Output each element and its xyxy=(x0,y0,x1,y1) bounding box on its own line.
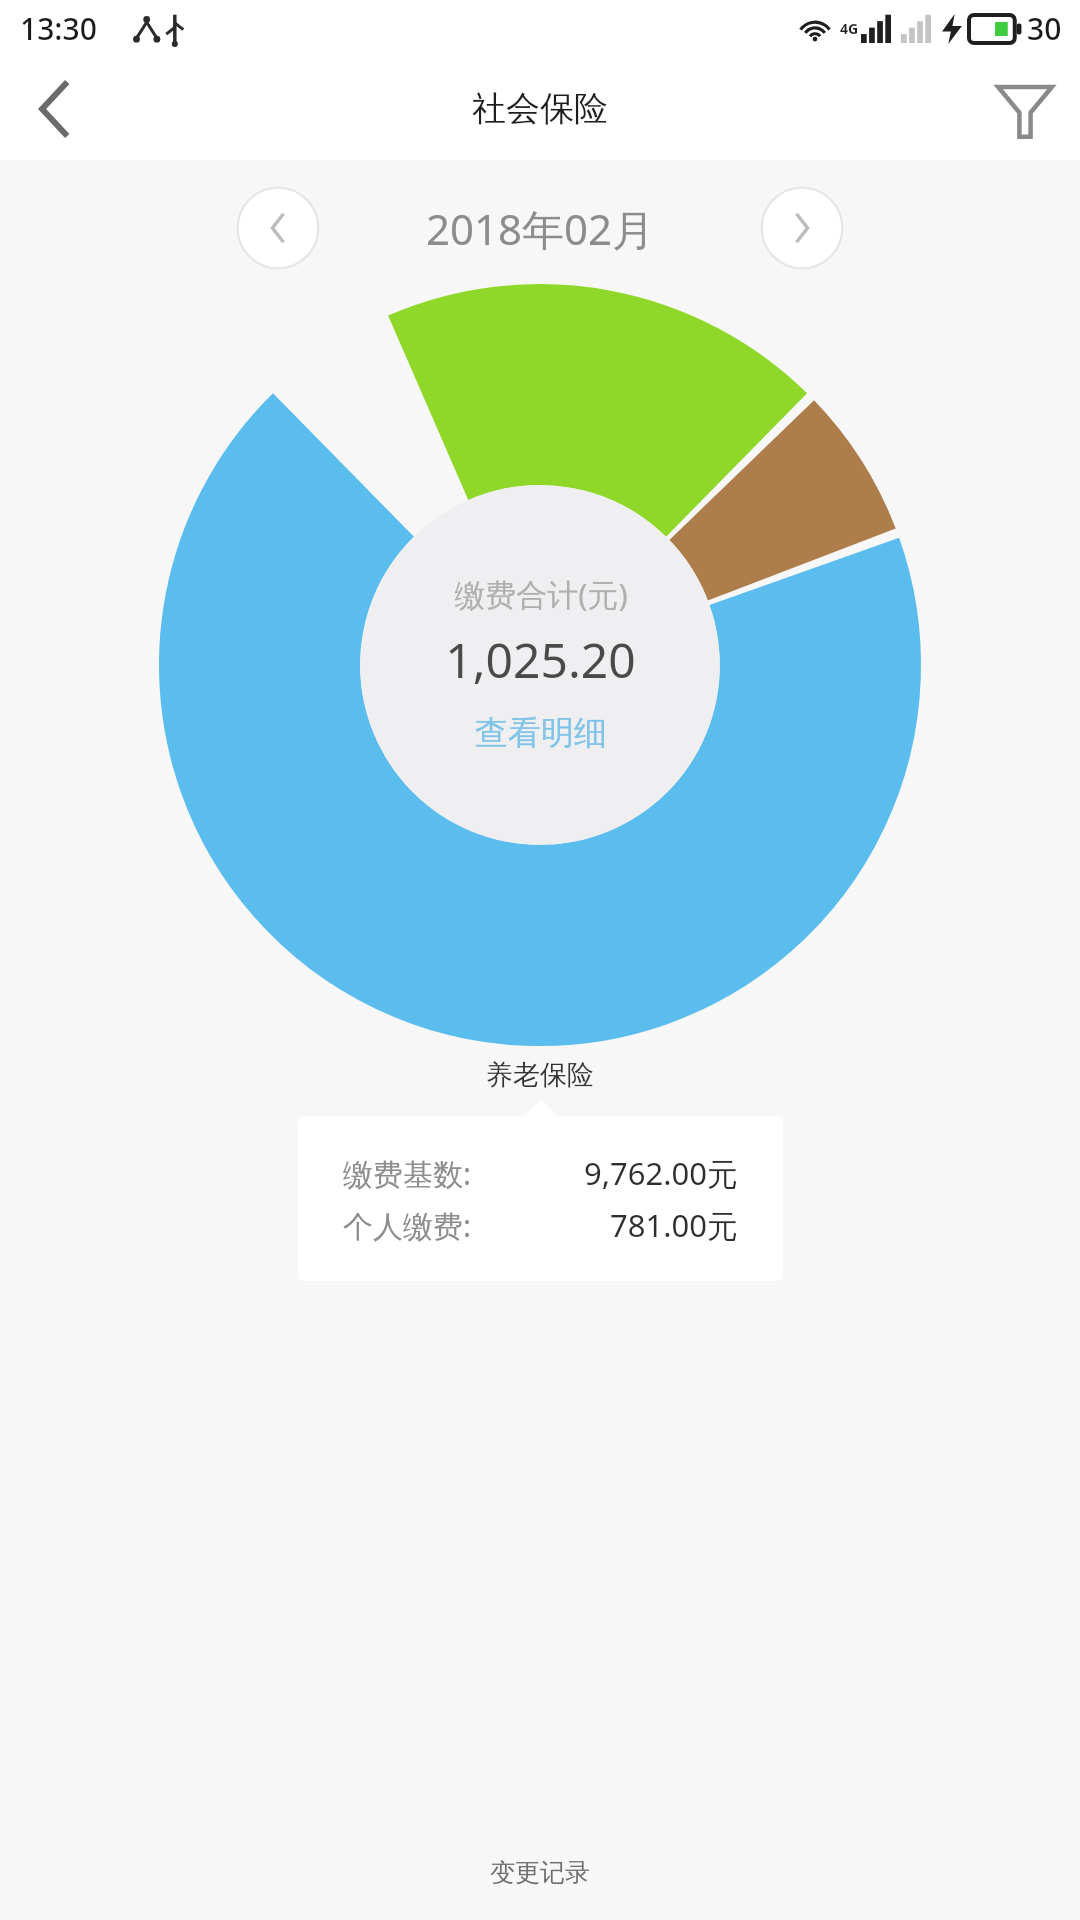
button[interactable]: Back xyxy=(0,57,110,160)
staticText: 2018年02月 xyxy=(320,200,760,257)
staticText: 9,762.00元 xyxy=(583,1152,738,1194)
staticText: 1,025.20 xyxy=(445,627,636,692)
button[interactable]: 变更记录 xyxy=(0,1824,1080,1920)
staticText: 缴费基数: xyxy=(343,1153,472,1194)
staticText: 30 xyxy=(1027,8,1062,49)
staticText: 变更记录 xyxy=(490,1857,590,1888)
button[interactable]: Filter xyxy=(970,57,1080,160)
staticText: 社会保险 xyxy=(472,87,608,130)
staticText: 养老保险 xyxy=(0,1058,1080,1092)
button[interactable]: 缴费基数: xyxy=(298,1116,783,1281)
staticText: 查看明细 xyxy=(475,712,607,754)
staticText: 13:30 xyxy=(20,8,97,49)
button[interactable]: Previous month xyxy=(236,186,320,270)
button[interactable]: Next month xyxy=(760,186,844,270)
button[interactable]: 查看明细 xyxy=(465,708,617,758)
staticText: 4G xyxy=(840,19,859,38)
staticText: 个人缴费: xyxy=(343,1205,472,1246)
staticText: 缴费合计(元) xyxy=(454,573,628,615)
staticText: 781.00元 xyxy=(610,1204,738,1246)
